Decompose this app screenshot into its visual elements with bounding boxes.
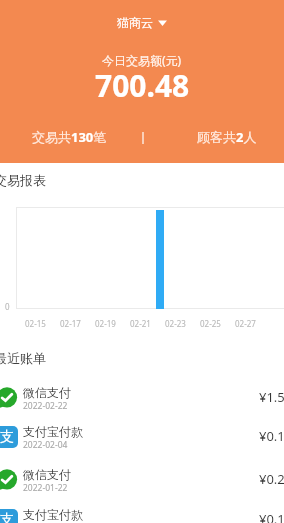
button[interactable]: 顾客共2人 bbox=[197, 128, 257, 146]
staticText: 微信支付 bbox=[23, 385, 71, 400]
staticText: 02-23 bbox=[165, 318, 186, 329]
staticText: 02-27 bbox=[235, 318, 256, 329]
staticText: ¥0.16 bbox=[259, 427, 284, 445]
staticText: ¥1.56 bbox=[259, 388, 284, 406]
staticText: ¥0.26 bbox=[259, 470, 284, 488]
button[interactable]: 支 bbox=[0, 500, 284, 523]
staticText: ¥0.16 bbox=[259, 510, 284, 523]
staticText: 支付宝付款 bbox=[23, 507, 83, 522]
staticText: 02-25 bbox=[200, 318, 221, 329]
button[interactable]: 猫商云 bbox=[117, 15, 167, 30]
button[interactable]: 交易共130笔 bbox=[32, 128, 107, 146]
staticText: 2022-02-04 bbox=[23, 439, 68, 451]
staticText: 0 bbox=[5, 301, 10, 312]
staticText: 02-17 bbox=[60, 318, 81, 329]
staticText: 700.48 bbox=[95, 65, 190, 106]
button[interactable]: 微信支付 bbox=[0, 460, 284, 500]
staticText: 支 bbox=[0, 511, 14, 523]
button[interactable]: 支 bbox=[0, 417, 284, 457]
staticText: 交易报表 bbox=[0, 172, 46, 188]
staticText: 02-21 bbox=[130, 318, 151, 329]
staticText: 今日交易额(元) bbox=[102, 52, 182, 68]
staticText: 猫商云 bbox=[117, 15, 153, 30]
staticText: 2022-01-22 bbox=[23, 482, 68, 494]
staticText: 微信支付 bbox=[23, 467, 71, 482]
staticText: 支 bbox=[0, 428, 14, 446]
staticText: 最近账单 bbox=[0, 350, 46, 366]
staticText: 02-19 bbox=[95, 318, 116, 329]
staticText: 支付宝付款 bbox=[23, 424, 83, 439]
button[interactable]: 微信支付 bbox=[0, 378, 284, 418]
staticText: 2022-02-22 bbox=[23, 400, 68, 412]
staticText: 02-15 bbox=[25, 318, 46, 329]
